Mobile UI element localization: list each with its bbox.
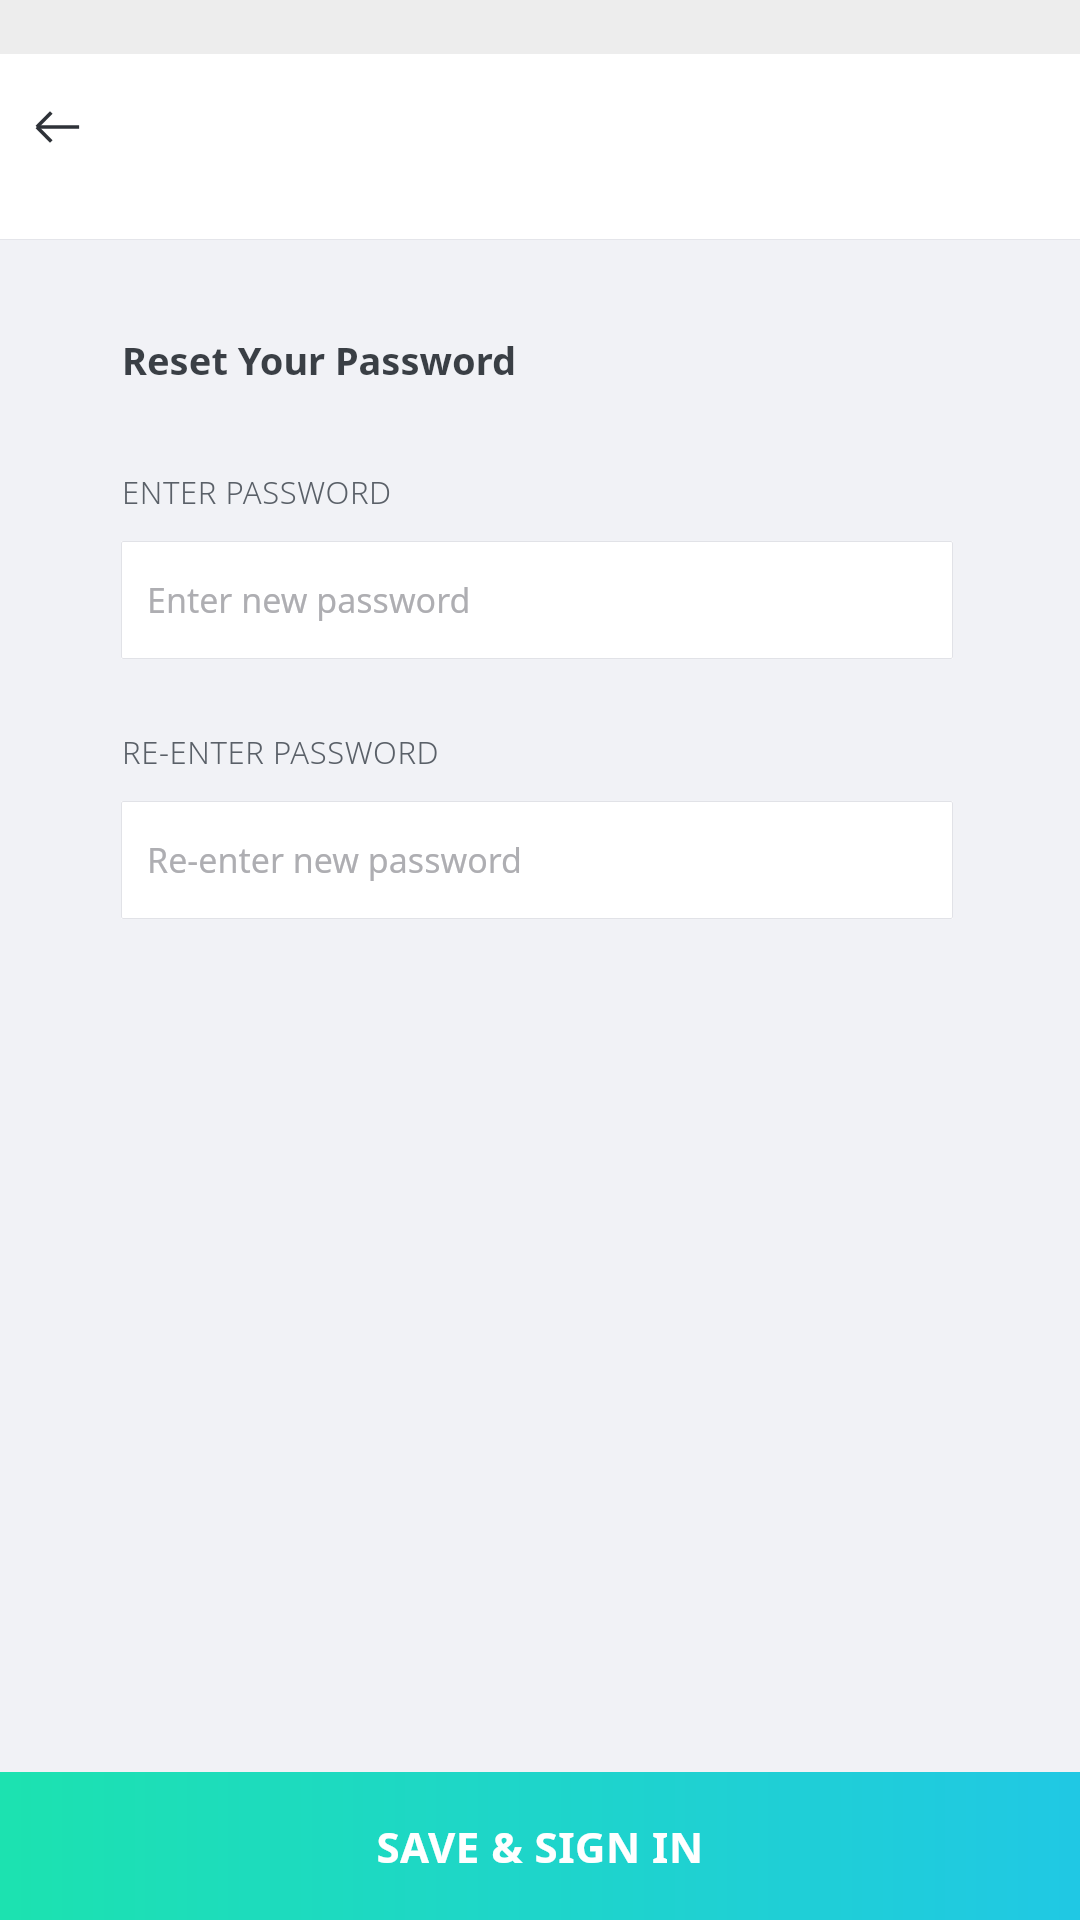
button[interactable]: Re-enter new password — [121, 801, 953, 919]
staticText: Enter new password — [147, 577, 471, 623]
button[interactable]: SAVE & SIGN IN — [0, 1772, 1080, 1920]
staticText: SAVE & SIGN IN — [376, 1818, 704, 1875]
button[interactable]: Back — [10, 79, 106, 175]
staticText: Reset Your Password — [122, 334, 516, 386]
staticText: RE-ENTER PASSWORD — [122, 731, 440, 773]
staticText: ENTER PASSWORD — [122, 471, 392, 513]
button[interactable]: Enter new password — [121, 541, 953, 659]
staticText: Re-enter new password — [147, 837, 522, 883]
